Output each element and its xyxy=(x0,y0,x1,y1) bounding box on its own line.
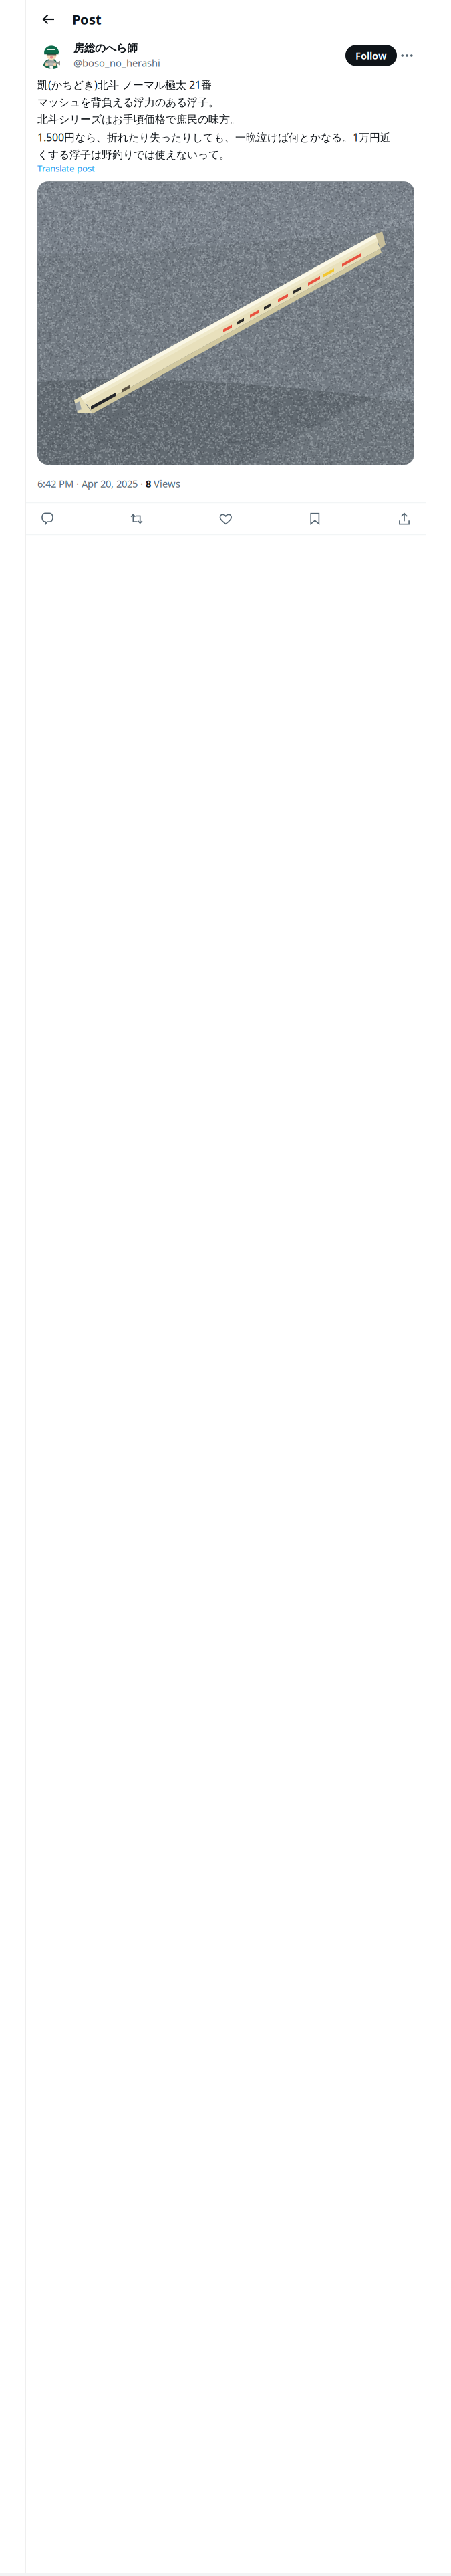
button[interactable]: Share xyxy=(391,505,418,532)
button[interactable]: Follow xyxy=(345,45,397,66)
staticText: Follow xyxy=(355,49,387,62)
staticText: 凱(かちどき)北斗 ノーマル極太 21番 マッシュを背負える浮力のある浮子。 北… xyxy=(37,78,391,162)
staticText: Post xyxy=(72,10,102,28)
button[interactable]: Like xyxy=(212,505,239,532)
button[interactable]: Back xyxy=(37,7,61,31)
staticText: 8 xyxy=(146,477,151,490)
button[interactable]: More xyxy=(400,48,414,63)
staticText: @boso_no_herashi xyxy=(73,56,160,69)
staticText: 6:42 PM · Apr 20, 2025 · xyxy=(37,477,146,490)
button[interactable]: Bookmark xyxy=(302,505,328,532)
button[interactable]: Translate post xyxy=(37,162,95,175)
button[interactable]: Repost xyxy=(123,505,150,532)
button[interactable]: Reply xyxy=(34,505,61,532)
staticText: 房総のへら師 xyxy=(73,42,138,55)
staticText: Views xyxy=(151,477,180,490)
staticText: Translate post xyxy=(37,162,95,174)
